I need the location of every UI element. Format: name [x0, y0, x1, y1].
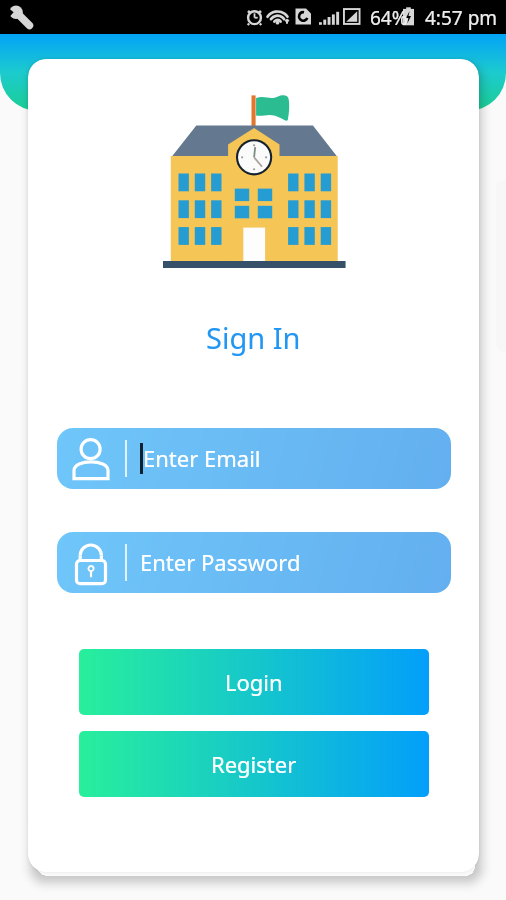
staticText: Sign In	[206, 318, 301, 357]
staticText: Enter Password	[140, 547, 301, 577]
staticText: 4:57 pm	[425, 5, 498, 31]
staticText: Register	[211, 749, 297, 779]
staticText: Login	[225, 667, 283, 697]
button[interactable]: Enter Email	[57, 428, 451, 489]
staticText: Enter Email	[143, 443, 261, 473]
button[interactable]: Register	[79, 731, 429, 797]
staticText: 64%	[370, 5, 408, 31]
button[interactable]: Login	[79, 649, 429, 715]
button[interactable]: Enter Password	[57, 532, 451, 593]
